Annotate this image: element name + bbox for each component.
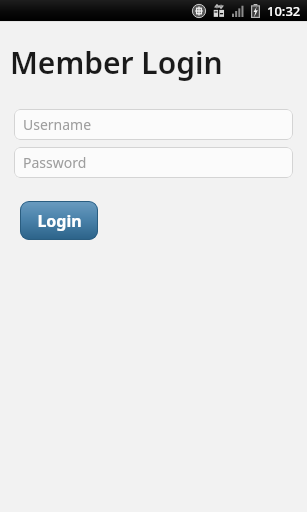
staticText: 10:32	[267, 2, 301, 20]
staticText: Member Login	[10, 42, 223, 83]
button[interactable]: Login	[20, 201, 98, 240]
other: 3G network	[213, 4, 225, 18]
staticText: Username	[23, 115, 92, 134]
other: Input method	[192, 4, 206, 18]
other: Battery charging	[251, 4, 260, 18]
button[interactable]: Password	[14, 147, 293, 178]
staticText: Login	[37, 210, 82, 232]
other: Signal strength	[232, 5, 245, 17]
staticText: Password	[23, 153, 87, 172]
button[interactable]: Username	[14, 109, 293, 140]
